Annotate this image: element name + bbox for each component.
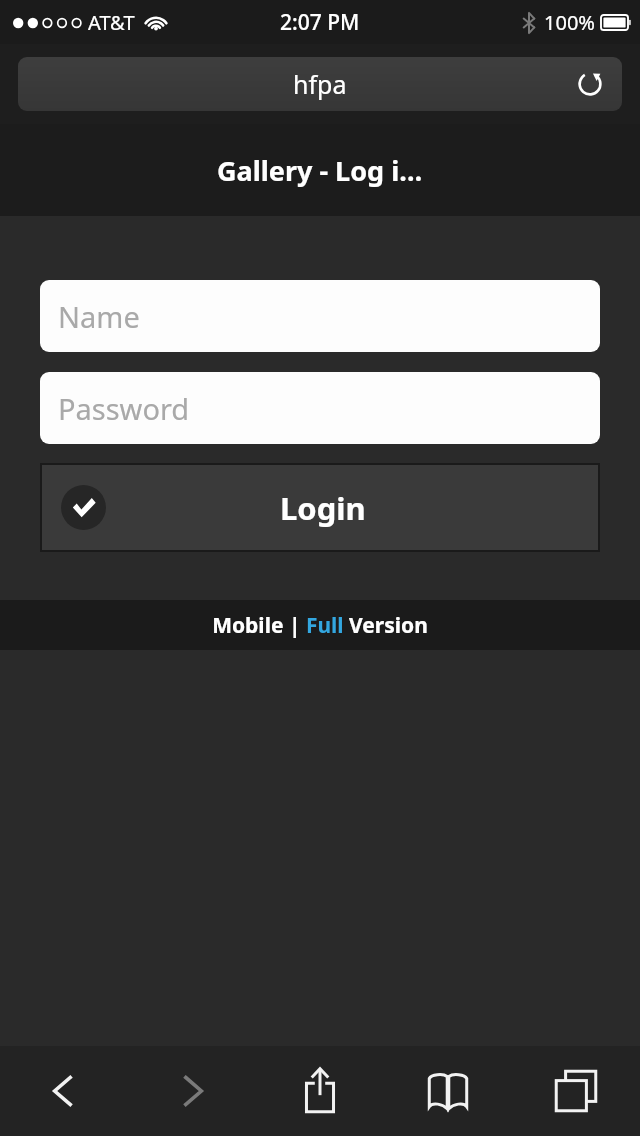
- staticText: Login: [280, 487, 366, 529]
- button[interactable]: Bookmarks: [384, 1046, 512, 1136]
- button[interactable]: Forward: [128, 1046, 256, 1136]
- staticText: hfpa: [293, 67, 347, 101]
- button[interactable]: hfpa: [18, 57, 622, 111]
- staticText: 2:07 PM: [280, 8, 360, 37]
- button[interactable]: Mobile | Full Version: [212, 611, 428, 640]
- staticText: AT&T: [88, 9, 135, 36]
- button[interactable]: Name: [40, 280, 600, 352]
- staticText: Name: [58, 297, 140, 336]
- button[interactable]: Tabs: [512, 1046, 640, 1136]
- staticText: Mobile | Full Version: [212, 611, 428, 640]
- button[interactable]: Share: [256, 1046, 384, 1136]
- button[interactable]: Reload: [570, 64, 610, 104]
- staticText: Gallery - Log i…: [217, 152, 423, 189]
- staticText: 100%: [544, 9, 595, 36]
- staticText: Password: [58, 389, 190, 428]
- button[interactable]: Password: [40, 372, 600, 444]
- button[interactable]: Login: [42, 465, 598, 550]
- button[interactable]: Back: [0, 1046, 128, 1136]
